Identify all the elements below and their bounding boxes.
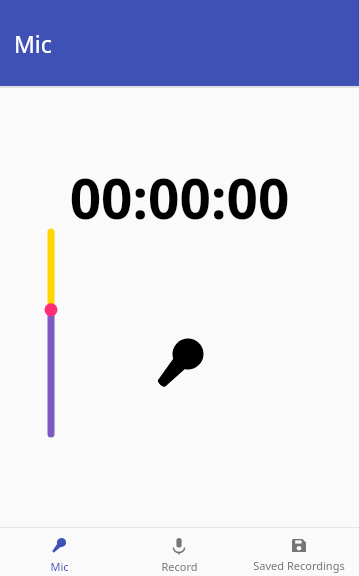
- button[interactable]: Mic: [0, 531, 119, 574]
- staticText: 00:00:00: [0, 160, 359, 235]
- staticText: Record: [161, 559, 198, 574]
- button[interactable]: Volume slider: [38, 228, 64, 438]
- button[interactable]: Microphone: [152, 333, 214, 395]
- button[interactable]: Saved Recordings: [239, 532, 359, 573]
- staticText: Saved Recordings: [253, 558, 345, 573]
- staticText: Mic: [14, 28, 52, 59]
- staticText: Mic: [50, 559, 69, 574]
- button[interactable]: Record: [119, 531, 239, 574]
